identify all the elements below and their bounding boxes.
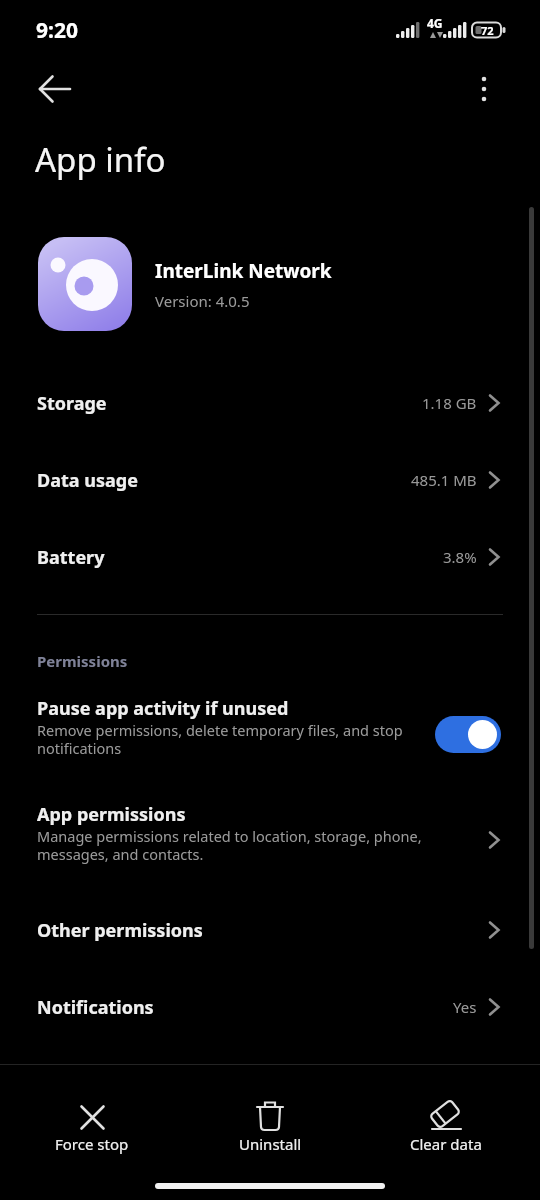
staticText: Pause app activity if unused	[37, 696, 289, 721]
staticText: Notifications	[37, 995, 154, 1020]
staticText: Storage	[37, 391, 107, 416]
button[interactable]	[460, 61, 508, 117]
staticText: App info	[35, 137, 166, 182]
staticText: Permissions	[37, 651, 128, 671]
staticText: Battery	[37, 545, 105, 570]
staticText: Force stop	[55, 1134, 129, 1154]
staticText: 3.8%	[443, 547, 477, 567]
staticText: Manage permissions related to location, …	[37, 826, 422, 864]
button[interactable]: Notifications	[0, 969, 540, 1045]
button[interactable]: Other permissions	[0, 892, 540, 968]
button[interactable]	[26, 61, 84, 117]
staticText: 485.1 MB	[411, 470, 477, 490]
staticText: Data usage	[37, 468, 138, 493]
staticText: Remove permissions, delete temporary fil…	[37, 720, 403, 758]
staticText: Other permissions	[37, 918, 203, 943]
staticText: Version: 4.0.5	[155, 291, 250, 311]
staticText: Yes	[453, 997, 477, 1017]
button[interactable]: Force stop	[32, 1088, 152, 1164]
button[interactable]: Uninstall	[210, 1088, 330, 1164]
button[interactable]: Data usage	[0, 442, 540, 518]
button[interactable]: Clear data	[386, 1088, 506, 1164]
button[interactable]: Pause app activity if unused	[0, 684, 540, 768]
staticText: 72	[481, 23, 494, 38]
button[interactable]	[435, 716, 501, 753]
button[interactable]: Storage	[0, 365, 540, 441]
staticText: Clear data	[410, 1134, 482, 1154]
staticText: 4G	[427, 15, 443, 31]
staticText: 1.18 GB	[422, 393, 477, 413]
button[interactable]: App permissions	[0, 790, 540, 874]
staticText: InterLink Network	[155, 258, 332, 284]
button[interactable]: Battery	[0, 519, 540, 595]
staticText: Uninstall	[239, 1134, 302, 1154]
staticText: 9:20	[36, 16, 78, 45]
staticText: App permissions	[37, 802, 186, 827]
